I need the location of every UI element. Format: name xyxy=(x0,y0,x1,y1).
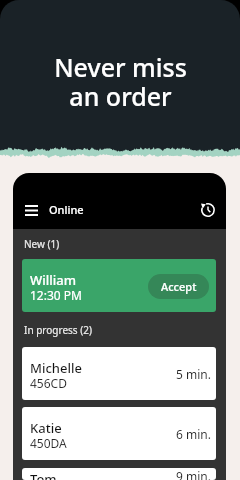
button[interactable]: Katie xyxy=(22,407,216,460)
staticText: 456CD xyxy=(30,375,67,391)
staticText: William xyxy=(30,271,77,289)
staticText: Tom xyxy=(30,470,57,480)
staticText: Accept xyxy=(161,279,197,294)
button[interactable]: Menu xyxy=(20,199,42,221)
button[interactable]: Michelle xyxy=(22,347,216,400)
staticText: 12:30 PM xyxy=(30,287,82,303)
staticText: 5 min. xyxy=(176,366,211,382)
staticText: Never miss an order xyxy=(54,50,187,113)
staticText: New (1) xyxy=(24,237,60,251)
staticText: 6 min. xyxy=(176,426,211,442)
button[interactable]: William xyxy=(22,259,216,312)
staticText: 450DA xyxy=(30,435,67,451)
button[interactable]: Accept xyxy=(148,274,209,299)
staticText: Michelle xyxy=(30,359,82,377)
staticText: In progress (2) xyxy=(24,323,92,337)
button[interactable]: Tom xyxy=(22,468,216,480)
staticText: 9 min. xyxy=(176,468,211,480)
staticText: Online xyxy=(49,202,84,217)
staticText: Katie xyxy=(30,419,62,437)
button[interactable]: History xyxy=(197,199,219,221)
